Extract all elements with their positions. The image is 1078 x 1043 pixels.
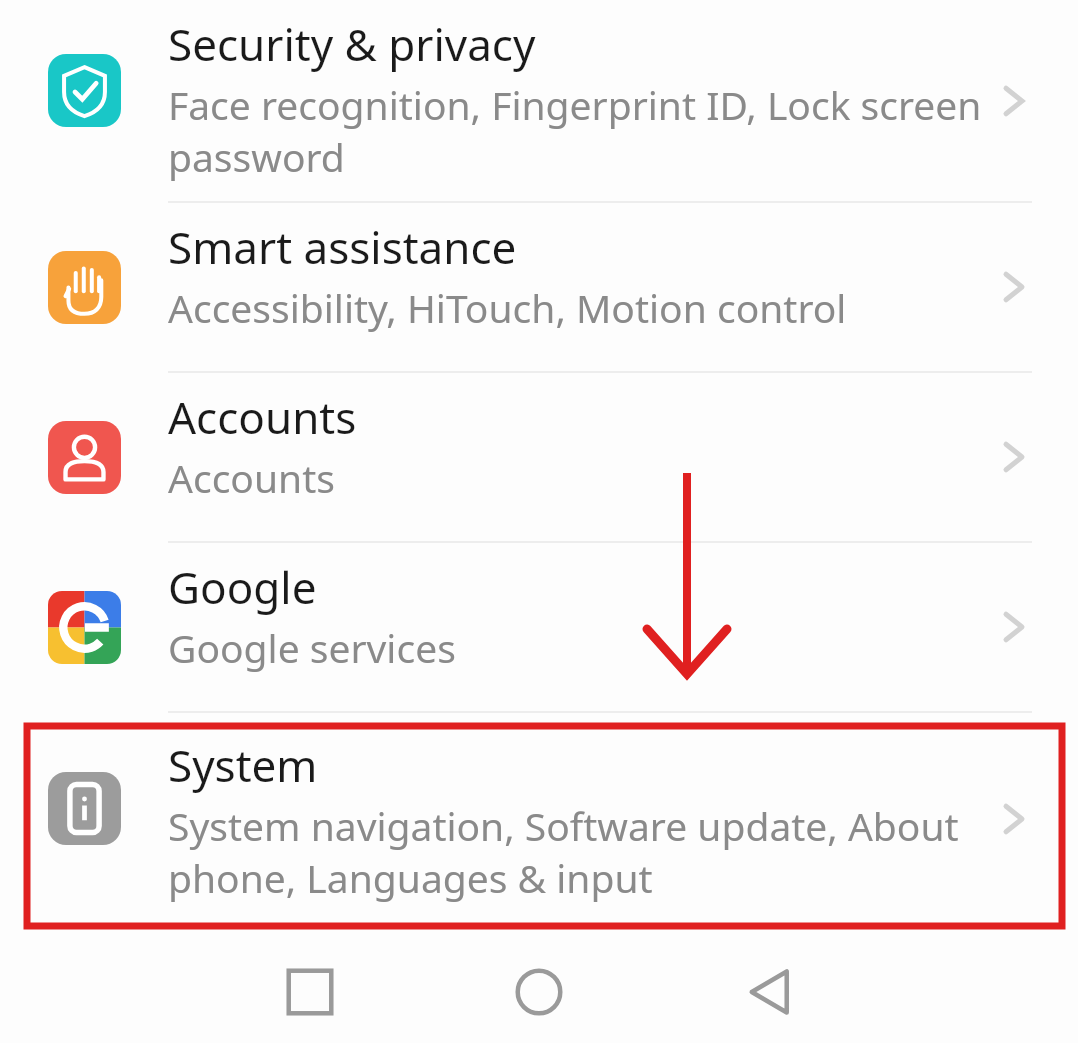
staticText: System bbox=[168, 735, 318, 795]
button[interactable]: Home bbox=[501, 954, 577, 1030]
button[interactable]: System bbox=[0, 713, 1078, 925]
staticText: Google services bbox=[168, 621, 456, 674]
button[interactable]: Accounts bbox=[0, 373, 1078, 541]
staticText: Accounts bbox=[168, 387, 357, 447]
staticText: System navigation, Software update, Abou… bbox=[168, 799, 1008, 904]
button[interactable]: Smart assistance bbox=[0, 203, 1078, 371]
button[interactable]: Back bbox=[732, 954, 808, 1030]
staticText: Face recognition, Fingerprint ID, Lock s… bbox=[168, 78, 1008, 183]
staticText: Accounts bbox=[168, 451, 335, 504]
button[interactable]: Google bbox=[0, 543, 1078, 711]
button[interactable]: Security & privacy bbox=[0, 0, 1078, 201]
staticText: Google bbox=[168, 557, 317, 617]
button[interactable]: Recent apps bbox=[272, 954, 348, 1030]
staticText: Accessibility, HiTouch, Motion control bbox=[168, 281, 847, 334]
staticText: Smart assistance bbox=[168, 217, 517, 277]
staticText: Security & privacy bbox=[168, 14, 536, 74]
